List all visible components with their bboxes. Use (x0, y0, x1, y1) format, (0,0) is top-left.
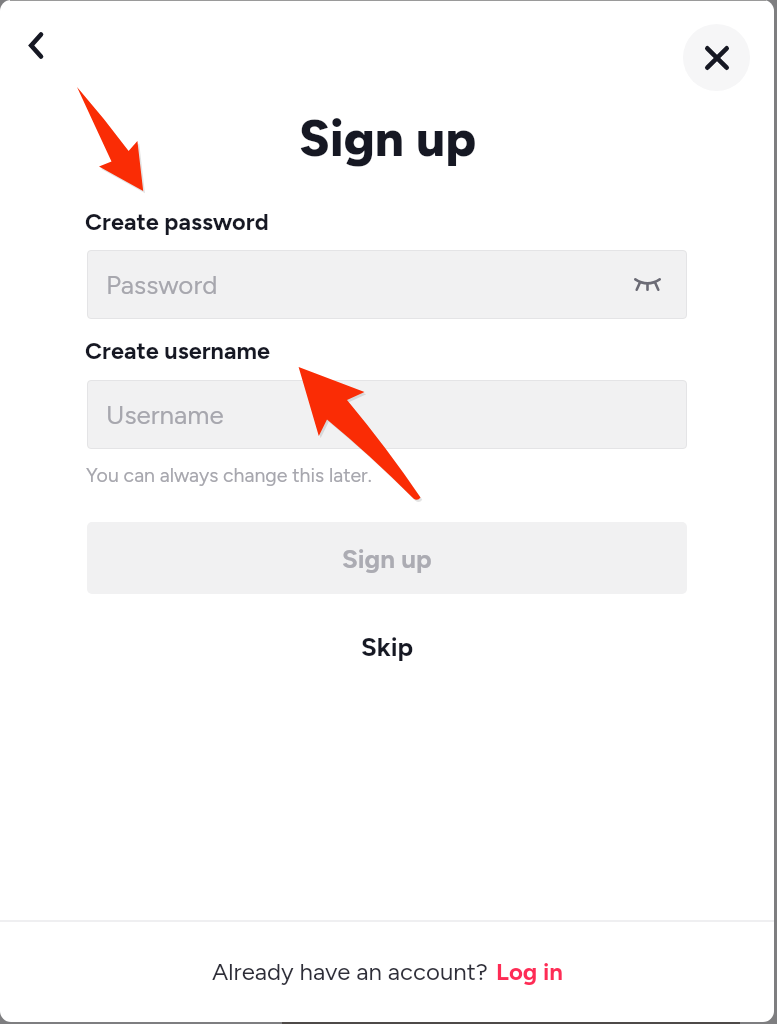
staticText: Password (106, 269, 218, 300)
button[interactable]: Sign up (87, 522, 687, 594)
staticText: Skip (361, 631, 414, 662)
button[interactable]: Log in (488, 957, 563, 986)
button[interactable]: Back (6, 15, 66, 75)
staticText: Sign up (299, 108, 477, 169)
staticText: Already have an account? (212, 957, 488, 986)
staticText: Create password (85, 208, 269, 236)
button[interactable]: Skip (330, 621, 444, 671)
button[interactable]: Password (87, 250, 687, 319)
staticText: Create username (85, 337, 270, 365)
staticText: You can always change this later. (86, 463, 372, 486)
button[interactable]: Close (683, 24, 750, 91)
staticText: Sign up (342, 543, 432, 574)
staticText: Username (106, 399, 224, 430)
staticText: Log in (496, 957, 563, 986)
button[interactable]: Username (87, 380, 687, 449)
